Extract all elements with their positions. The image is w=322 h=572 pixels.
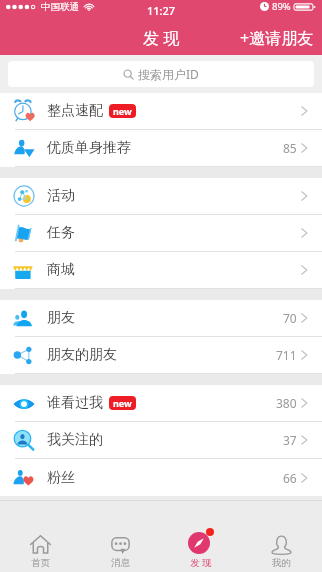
button[interactable]: 优质单身推荐 — [0, 130, 322, 167]
staticText: 搜索用户ID — [138, 66, 199, 82]
button[interactable]: 任务 — [0, 215, 322, 252]
staticText: 11:27 — [147, 3, 176, 18]
staticText: +邀请朋友 — [240, 27, 314, 49]
other: Home — [30, 534, 51, 555]
staticText: 消息 — [111, 557, 130, 569]
button[interactable]: 整点速配 — [0, 93, 322, 130]
button[interactable]: +邀请朋友 — [230, 21, 322, 55]
staticText: 发 现 — [190, 556, 212, 569]
button[interactable]: 朋友 — [0, 300, 322, 337]
button[interactable]: 发 现 — [160, 501, 241, 572]
button[interactable]: 搜索用户ID — [8, 61, 314, 87]
staticText: 我关注的 — [47, 431, 103, 449]
other: Profile — [271, 534, 292, 555]
staticText: 85 — [283, 140, 297, 156]
staticText: 活动 — [47, 187, 75, 205]
staticText: 89% — [272, 0, 291, 13]
button[interactable]: 朋友的朋友 — [0, 337, 322, 374]
staticText: 中国联通 — [41, 1, 79, 13]
button[interactable]: 活动 — [0, 178, 322, 215]
staticText: 66 — [283, 470, 297, 486]
button[interactable]: Messages — [80, 501, 160, 572]
staticText: 发 现 — [143, 27, 180, 49]
button[interactable]: 谁看过我 — [0, 385, 322, 422]
staticText: new — [113, 397, 132, 409]
staticText: 首页 — [31, 557, 50, 569]
button[interactable]: 粉丝 — [0, 459, 322, 496]
staticText: 380 — [276, 395, 297, 411]
button[interactable]: 商城 — [0, 252, 322, 289]
staticText: 37 — [283, 432, 297, 448]
other: Messages — [110, 534, 131, 555]
staticText: 711 — [276, 347, 297, 363]
button[interactable]: 我关注的 — [0, 422, 322, 459]
button[interactable]: Profile — [241, 501, 322, 572]
button[interactable]: Home — [0, 501, 80, 572]
staticText: 任务 — [47, 224, 75, 242]
staticText: 粉丝 — [47, 469, 75, 487]
staticText: 我的 — [272, 557, 291, 569]
staticText: 朋友的朋友 — [47, 346, 117, 364]
staticText: 70 — [283, 310, 297, 326]
staticText: new — [113, 105, 132, 117]
staticText: 优质单身推荐 — [47, 139, 131, 157]
staticText: 朋友 — [47, 309, 75, 327]
staticText: 整点速配 — [47, 102, 103, 120]
staticText: 商城 — [47, 261, 75, 279]
staticText: 谁看过我 — [47, 394, 103, 412]
